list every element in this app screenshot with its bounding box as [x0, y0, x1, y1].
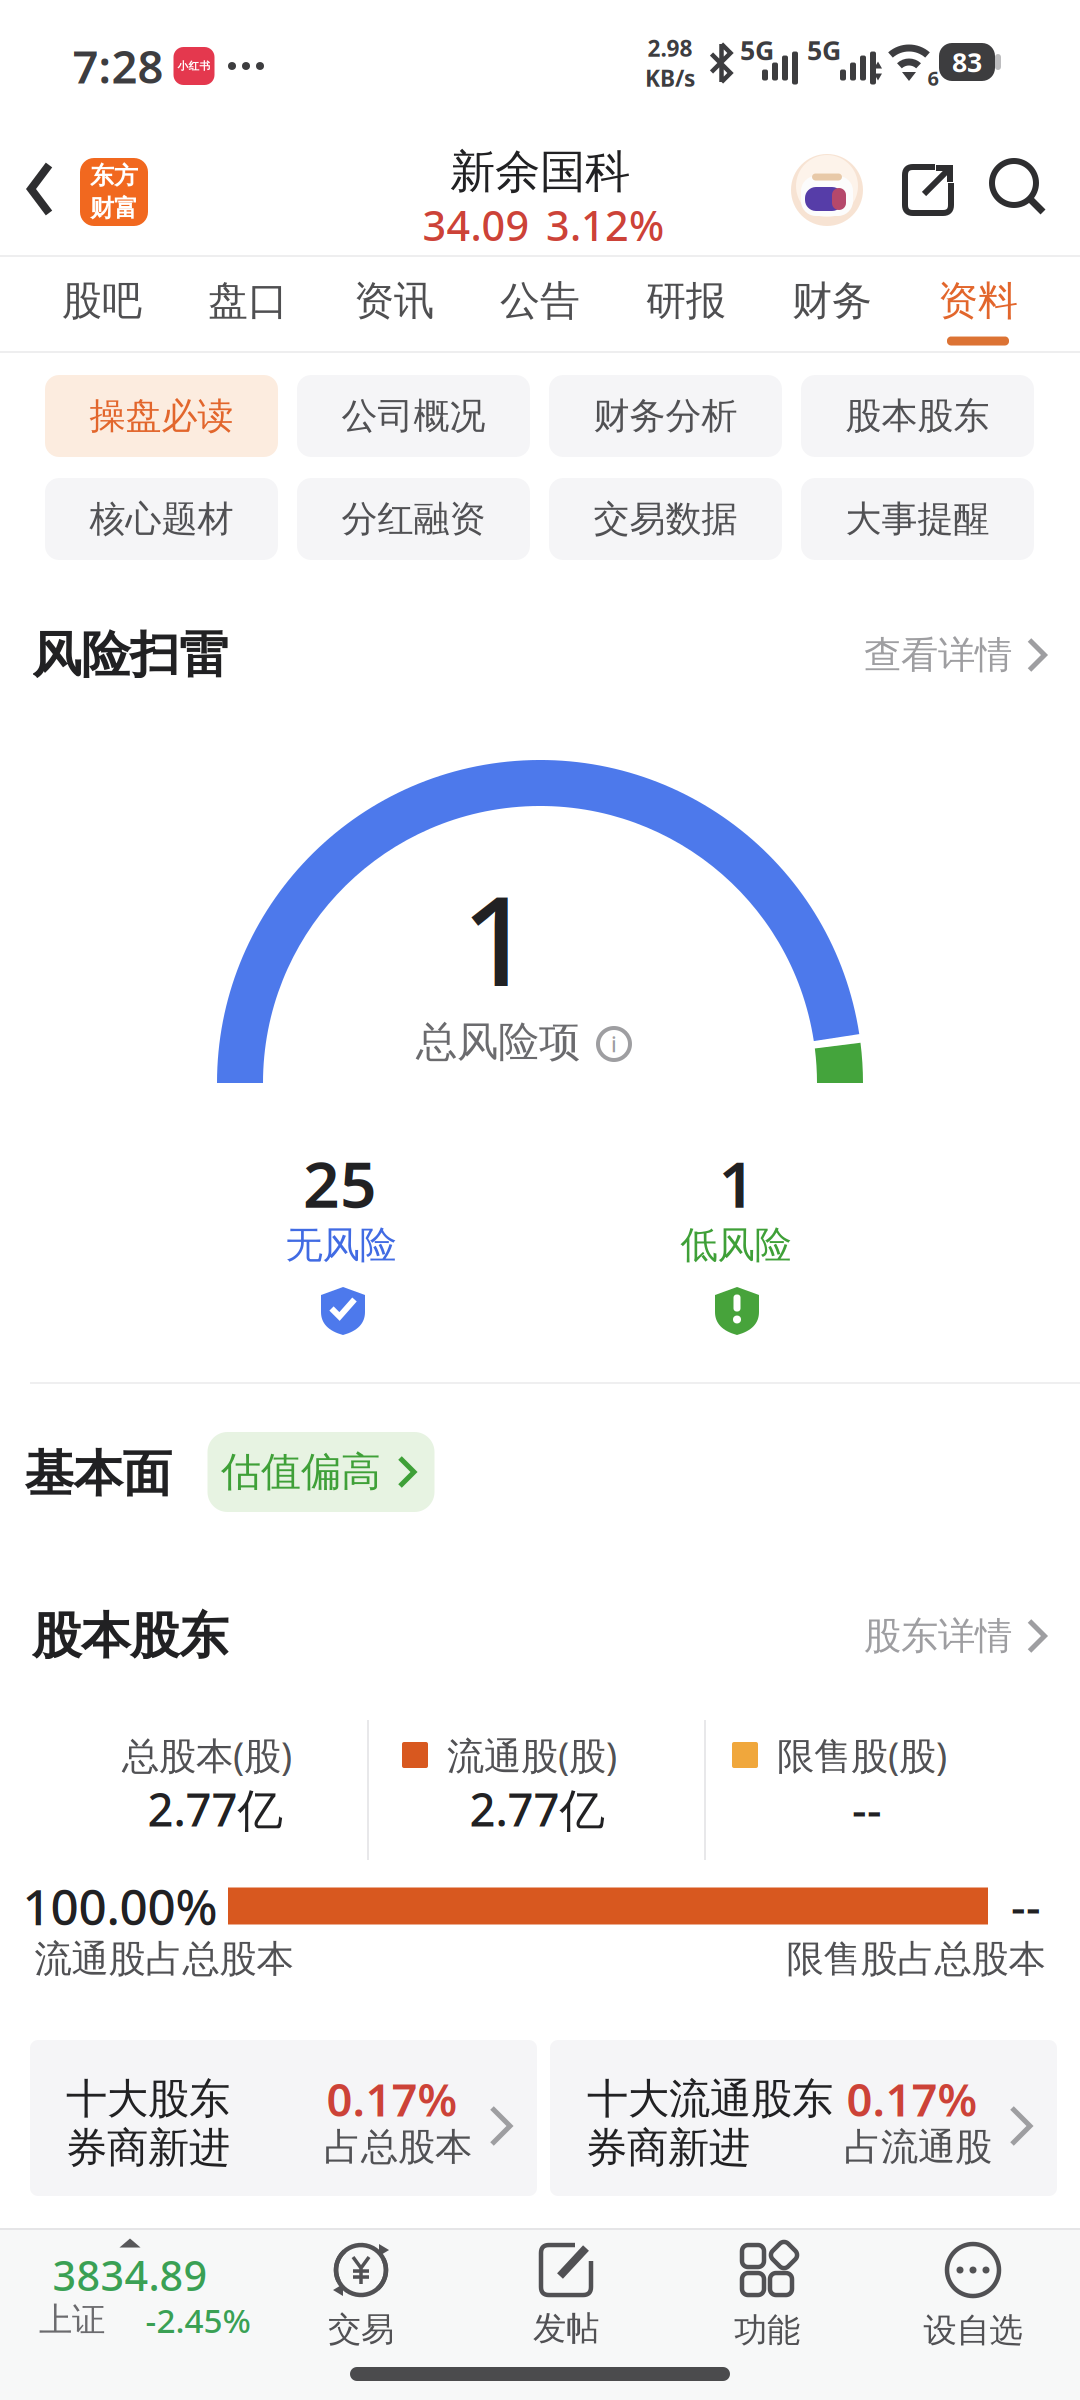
staticText: 流通股占总股本	[34, 1936, 293, 1982]
staticText: 小红书	[177, 59, 210, 72]
staticText: 资讯	[354, 276, 434, 325]
button[interactable]: 分红融资	[297, 478, 530, 560]
staticText: 无风险	[285, 1222, 396, 1268]
staticText: 100.00%	[22, 1873, 217, 1939]
staticText: 东方	[90, 161, 138, 190]
staticText: 流通股(股)	[447, 1730, 617, 1780]
button[interactable]: 公告	[467, 261, 613, 341]
staticText: 交易	[328, 2309, 394, 2350]
staticText: 6	[927, 65, 938, 91]
staticText: 83	[952, 44, 982, 80]
button[interactable]: 公司概况	[297, 375, 530, 457]
button[interactable]: 东方财富	[80, 158, 148, 226]
staticText: 1	[718, 1140, 755, 1225]
staticText: 十大股东	[66, 2074, 230, 2124]
button[interactable]: 交易数据	[549, 478, 782, 560]
staticText: 2.98	[647, 33, 692, 63]
staticText: KB/s	[645, 63, 695, 93]
button[interactable]: 股吧	[29, 261, 175, 341]
staticText: 财务	[792, 276, 872, 325]
staticText: 券商新进	[66, 2123, 230, 2173]
button[interactable]: Search	[992, 161, 1046, 215]
staticText: 券商新进	[586, 2123, 750, 2173]
staticText: 公告	[500, 276, 580, 325]
button[interactable]: 功能	[734, 2241, 800, 2351]
staticText: 财务分析	[593, 394, 737, 438]
staticText: 占流通股	[844, 2124, 992, 2170]
staticText: 5G	[740, 32, 774, 68]
staticText: 7:28	[72, 36, 163, 96]
staticText: 限售股占总股本	[786, 1936, 1045, 1982]
button[interactable]: 查看详情	[864, 632, 1052, 678]
staticText: 查看详情	[864, 632, 1012, 678]
staticText: 风险扫雷	[32, 625, 228, 685]
button[interactable]: 资讯	[321, 261, 467, 341]
button[interactable]: 设自选	[923, 2241, 1022, 2351]
staticText: 分红融资	[341, 497, 485, 541]
staticText: 财富	[90, 193, 138, 223]
staticText: 设自选	[923, 2310, 1022, 2351]
staticText: 总股本(股)	[122, 1730, 292, 1780]
button[interactable]: 发帖	[533, 2243, 599, 2349]
staticText: 3834.89	[52, 2248, 207, 2302]
button[interactable]: Share	[902, 164, 954, 216]
staticText: 1	[461, 856, 532, 1020]
button[interactable]: 资料	[905, 261, 1051, 341]
staticText: 股吧	[62, 276, 142, 325]
button[interactable]: 总风险项说明	[596, 1026, 632, 1062]
staticText: 股本股东	[845, 394, 989, 438]
staticText: 低风险	[680, 1222, 791, 1268]
staticText: 功能	[734, 2310, 800, 2351]
staticText: 操盘必读	[89, 394, 233, 438]
staticText: 限售股(股)	[777, 1730, 947, 1780]
button[interactable]: 股东详情	[864, 1613, 1052, 1659]
staticText: 盘口	[208, 276, 288, 325]
button[interactable]: 3834.89	[0, 2230, 260, 2350]
staticText: i	[611, 1030, 617, 1058]
staticText: 25	[303, 1140, 377, 1225]
button[interactable]: 十大股东	[30, 2040, 537, 2196]
button[interactable]: 股本股东	[801, 375, 1034, 457]
staticText: 占总股本	[324, 2124, 472, 2170]
staticText: 公司概况	[341, 394, 485, 438]
staticText: 总风险项	[416, 1017, 580, 1067]
button[interactable]: 盘口	[175, 261, 321, 341]
staticText: 资料	[938, 276, 1018, 325]
staticText: 估值偏高	[221, 1447, 381, 1496]
staticText: 2.77亿	[147, 1779, 282, 1839]
staticText: 34.09	[422, 198, 529, 252]
staticText: 大事提醒	[845, 497, 989, 541]
button[interactable]: 财务分析	[549, 375, 782, 457]
button[interactable]: 操盘必读	[45, 375, 278, 457]
staticText: 3.12%	[546, 198, 664, 252]
staticText: 交易数据	[593, 497, 737, 541]
staticText: 股东详情	[864, 1613, 1012, 1659]
button[interactable]: 十大流通股东	[550, 2040, 1057, 2196]
staticText: --	[852, 1779, 882, 1839]
staticText: 核心题材	[89, 497, 233, 541]
staticText: 研报	[646, 276, 726, 325]
button[interactable]: 财务	[759, 261, 905, 341]
staticText: 5G	[807, 32, 841, 68]
button[interactable]: 大事提醒	[801, 478, 1034, 560]
button[interactable]: 交易	[328, 2242, 394, 2350]
button[interactable]: 研报	[613, 261, 759, 341]
staticText: 0.17%	[326, 2069, 457, 2129]
staticText: 基本面	[24, 1444, 171, 1504]
button[interactable]: 核心题材	[45, 478, 278, 560]
staticText: 上证	[39, 2299, 105, 2340]
staticText: -2.45%	[145, 2298, 250, 2342]
button[interactable]: 智能助手	[791, 154, 863, 226]
button[interactable]: 估值偏高	[207, 1432, 434, 1512]
staticText: --	[1011, 1876, 1041, 1936]
staticText: 0.17%	[846, 2069, 977, 2129]
button[interactable]: Back	[28, 162, 52, 216]
staticText: 新余国科	[450, 144, 630, 200]
staticText: 十大流通股东	[587, 2074, 833, 2124]
staticText: 2.77亿	[469, 1779, 604, 1839]
staticText: 发帖	[533, 2308, 599, 2349]
staticText: 股本股东	[32, 1606, 228, 1666]
